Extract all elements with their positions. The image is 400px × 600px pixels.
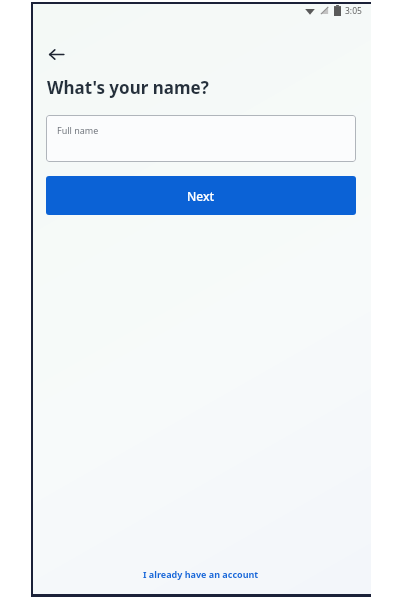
button[interactable]: Next (46, 176, 356, 215)
button[interactable]: Full name (46, 115, 356, 162)
staticText: What's your name? (47, 76, 209, 99)
staticText: 3:05 (345, 5, 362, 17)
staticText: Next (187, 188, 215, 204)
staticText: I already have an account (143, 568, 259, 580)
button[interactable]: I already have an account (31, 568, 371, 580)
staticText: Full name (57, 124, 99, 136)
button[interactable]: Back (40, 38, 72, 70)
